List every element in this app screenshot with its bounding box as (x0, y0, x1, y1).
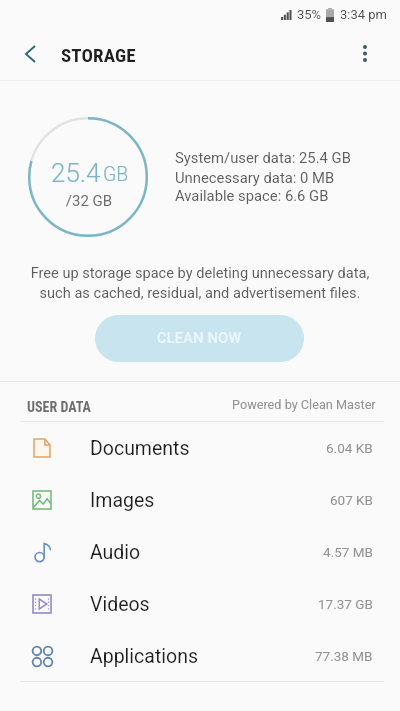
staticText: System/user data: 25.4 GB (175, 149, 351, 166)
staticText: Videos (90, 593, 150, 616)
staticText: Applications (90, 645, 198, 668)
button[interactable]: Audio (0, 526, 400, 578)
staticText: Available space: 6.6 GB (175, 187, 329, 204)
staticText: 6.04 KB (326, 440, 373, 456)
staticText: CLEAN NOW (157, 330, 242, 347)
staticText: 17.37 GB (318, 596, 373, 612)
staticText: Free up storage space by deleting unnece… (0, 264, 400, 301)
staticText: 77.38 MB (315, 648, 373, 664)
staticText: /32 GB (29, 192, 149, 210)
staticText: 3:34 pm (340, 7, 387, 22)
staticText: Documents (90, 437, 190, 460)
staticText: Powered by Clean Master (232, 397, 376, 412)
button[interactable]: Images (0, 474, 400, 526)
button[interactable]: Navigate up (14, 38, 46, 70)
staticText: 607 KB (330, 492, 373, 508)
button[interactable]: Applications (0, 630, 400, 682)
button[interactable]: Documents (0, 422, 400, 474)
staticText: STORAGE (61, 44, 136, 66)
staticText: 25.4 (51, 158, 101, 188)
staticText: Images (90, 489, 155, 512)
staticText: 4.57 MB (323, 544, 373, 560)
staticText: USER DATA (27, 399, 91, 415)
staticText: Unnecessary data: 0 MB (175, 169, 335, 186)
button[interactable]: Videos (0, 578, 400, 630)
button[interactable]: More options (350, 38, 380, 68)
staticText: 35% (297, 7, 322, 22)
staticText: Audio (90, 541, 141, 564)
staticText: GB (103, 163, 129, 186)
button[interactable]: CLEAN NOW (95, 315, 304, 362)
